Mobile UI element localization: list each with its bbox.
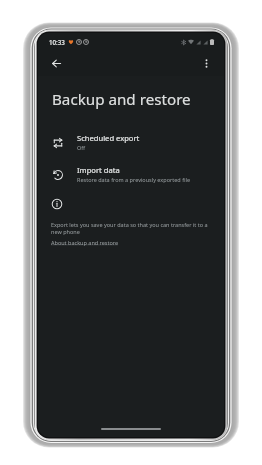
button[interactable]: Import data — [38, 158, 224, 190]
staticText: Export lets you save your data so that y… — [51, 221, 216, 235]
button[interactable]: Scheduled export — [38, 126, 224, 158]
staticText: Scheduled export — [77, 133, 140, 143]
button[interactable]: More options — [195, 52, 217, 74]
button[interactable]: About backup and restore — [51, 239, 119, 246]
staticText: 10:33 — [49, 38, 65, 46]
staticText: Off — [77, 144, 86, 151]
staticText: About backup and restore — [51, 239, 119, 246]
button[interactable]: Back — [45, 52, 67, 74]
staticText: Backup and restore — [52, 89, 191, 110]
staticText: Restore data from a previously exported … — [77, 176, 190, 183]
staticText: Import data — [77, 165, 120, 175]
